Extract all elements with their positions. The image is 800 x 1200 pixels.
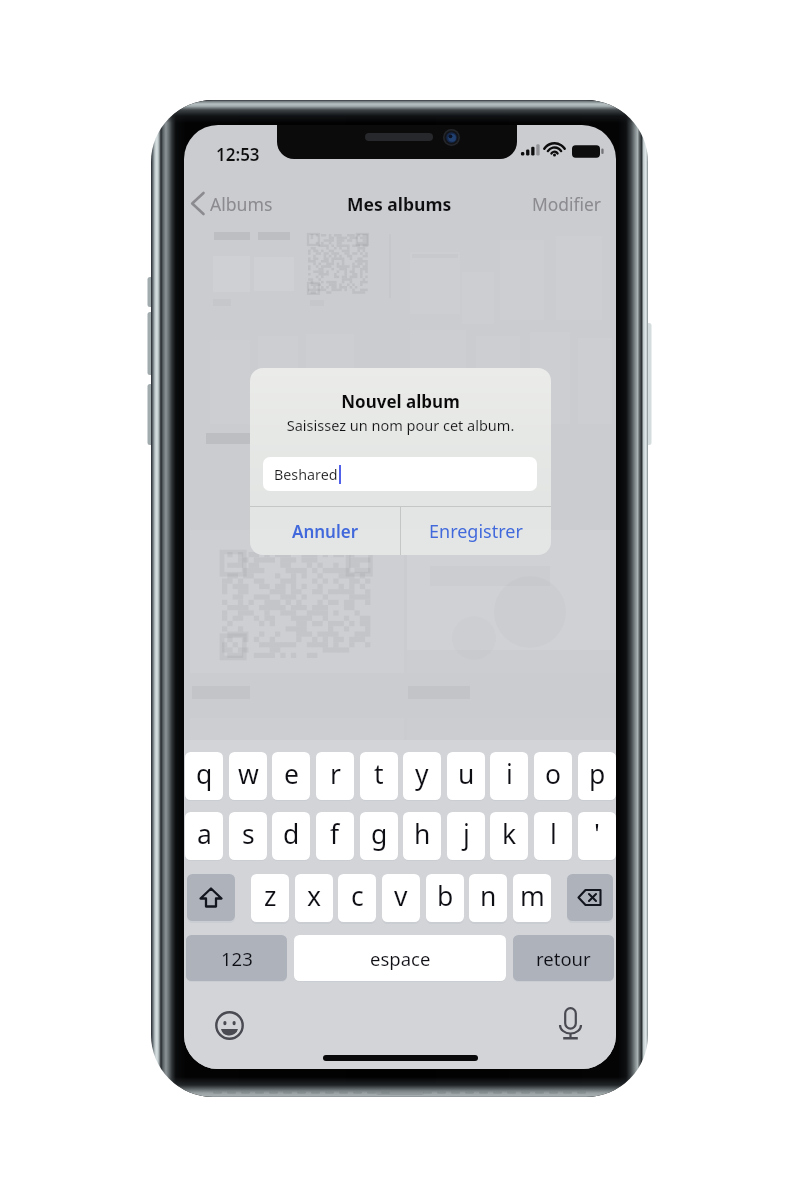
staticText: y	[415, 756, 429, 792]
staticText: Beshared	[274, 465, 338, 484]
staticText: Nouvel album	[250, 390, 551, 413]
button[interactable]: f	[316, 812, 354, 860]
button[interactable]: 123	[186, 935, 287, 981]
staticText: u	[458, 756, 475, 792]
staticText: t	[374, 756, 384, 792]
button[interactable]: d	[272, 812, 310, 860]
button[interactable]: x	[295, 874, 333, 922]
button[interactable]: Dictate	[559, 1007, 582, 1041]
staticText: b	[437, 878, 454, 914]
staticText: a	[197, 816, 212, 852]
button[interactable]: c	[338, 874, 376, 922]
button[interactable]: Backspace	[567, 874, 613, 921]
button[interactable]: Beshared	[263, 457, 537, 491]
button[interactable]: retour	[513, 935, 614, 981]
staticText: '	[594, 816, 600, 852]
staticText: g	[371, 816, 388, 852]
button[interactable]: '	[578, 812, 616, 860]
staticText: Modifier	[532, 192, 601, 216]
staticText: x	[307, 878, 322, 914]
button[interactable]: Modifier	[532, 192, 601, 216]
staticText: 12:53	[216, 143, 260, 166]
button[interactable]: l	[534, 812, 572, 860]
button[interactable]: h	[403, 812, 441, 860]
staticText: j	[463, 816, 470, 852]
staticText: l	[550, 816, 557, 852]
button[interactable]: u	[447, 752, 485, 800]
button[interactable]: m	[513, 874, 551, 922]
button[interactable]: v	[382, 874, 420, 922]
button[interactable]: s	[229, 812, 267, 860]
button[interactable]: k	[490, 812, 528, 860]
button[interactable]: z	[251, 874, 289, 922]
button[interactable]: i	[490, 752, 528, 800]
staticText: i	[506, 756, 513, 792]
staticText: n	[480, 878, 497, 914]
button[interactable]: a	[185, 812, 223, 860]
staticText: p	[589, 756, 606, 792]
button[interactable]: n	[469, 874, 507, 922]
staticText: Enregistrer	[429, 519, 523, 544]
staticText: Albums	[210, 192, 273, 216]
button[interactable]: Emoji keyboard	[215, 1011, 244, 1040]
button[interactable]: Annuler	[250, 507, 400, 555]
staticText: h	[414, 816, 431, 852]
button[interactable]: p	[578, 752, 616, 800]
button[interactable]: w	[229, 752, 267, 800]
staticText: 123	[221, 946, 253, 971]
button[interactable]: t	[360, 752, 398, 800]
staticText: Annuler	[292, 520, 359, 543]
button[interactable]: j	[447, 812, 485, 860]
staticText: m	[520, 878, 545, 914]
staticText: z	[264, 878, 277, 914]
button[interactable]: g	[360, 812, 398, 860]
staticText: d	[283, 816, 300, 852]
staticText: k	[502, 816, 517, 852]
button[interactable]: espace	[294, 935, 506, 981]
staticText: v	[394, 878, 408, 914]
staticText: Saisissez un nom pour cet album.	[250, 415, 551, 435]
staticText: r	[330, 756, 341, 792]
button[interactable]: y	[403, 752, 441, 800]
staticText: q	[196, 756, 213, 792]
button[interactable]: r	[316, 752, 354, 800]
button[interactable]: Enregistrer	[401, 507, 551, 555]
staticText: retour	[536, 946, 591, 971]
button[interactable]: q	[185, 752, 223, 800]
staticText: Mes albums	[347, 192, 452, 216]
staticText: espace	[370, 946, 431, 971]
staticText: e	[284, 756, 299, 792]
staticText: o	[545, 756, 562, 792]
button[interactable]: Shift	[187, 874, 235, 921]
button[interactable]: Albums	[188, 192, 273, 216]
button[interactable]: b	[426, 874, 464, 922]
staticText: w	[238, 756, 259, 792]
button[interactable]: e	[272, 752, 310, 800]
button[interactable]: o	[534, 752, 572, 800]
staticText: f	[330, 816, 340, 852]
staticText: s	[242, 816, 255, 852]
staticText: c	[351, 878, 364, 914]
